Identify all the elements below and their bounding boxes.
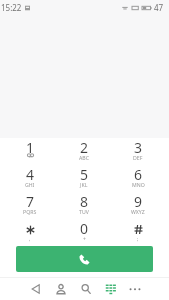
button[interactable]: 8	[57, 192, 111, 219]
staticText: 6	[134, 165, 143, 184]
button[interactable]: 1	[3, 138, 57, 165]
staticText: DEF	[133, 154, 143, 161]
button[interactable]: 6	[111, 165, 165, 192]
staticText: 9	[134, 192, 143, 211]
button[interactable]: More options	[125, 277, 145, 300]
staticText: ABC	[79, 154, 89, 161]
button[interactable]: 0	[57, 219, 111, 246]
staticText: 8	[80, 192, 89, 211]
staticText: 5	[80, 165, 89, 184]
button[interactable]: Dialpad	[100, 277, 120, 300]
button[interactable]: Call	[16, 246, 153, 272]
staticText: WXYZ	[131, 208, 145, 215]
button[interactable]: Search	[76, 277, 96, 300]
staticText: TUV	[79, 208, 89, 215]
button[interactable]: 9	[111, 192, 165, 219]
staticText: +	[83, 235, 86, 242]
staticText: ,	[29, 235, 31, 242]
staticText: 47	[154, 2, 164, 13]
staticText: 15:22	[1, 2, 22, 13]
button[interactable]: 7	[3, 192, 57, 219]
button[interactable]: 4	[3, 165, 57, 192]
staticText: ;	[137, 235, 139, 242]
button[interactable]: Contacts	[51, 277, 71, 300]
button[interactable]: ,	[3, 219, 57, 246]
staticText: 4	[26, 165, 35, 184]
staticText: GHI	[25, 181, 35, 188]
button[interactable]: 3	[111, 138, 165, 165]
staticText: 3	[134, 138, 143, 157]
button[interactable]: 2	[57, 138, 111, 165]
staticText: 1	[26, 138, 35, 157]
staticText: 0	[80, 219, 89, 238]
button[interactable]: Back	[26, 277, 46, 300]
button[interactable]: ;	[111, 219, 165, 246]
staticText: 7	[26, 192, 35, 211]
staticText: PQRS	[23, 208, 37, 215]
staticText: MNO	[132, 181, 145, 188]
button[interactable]: 5	[57, 165, 111, 192]
staticText: 2	[80, 138, 89, 157]
staticText: JKL	[80, 181, 88, 188]
